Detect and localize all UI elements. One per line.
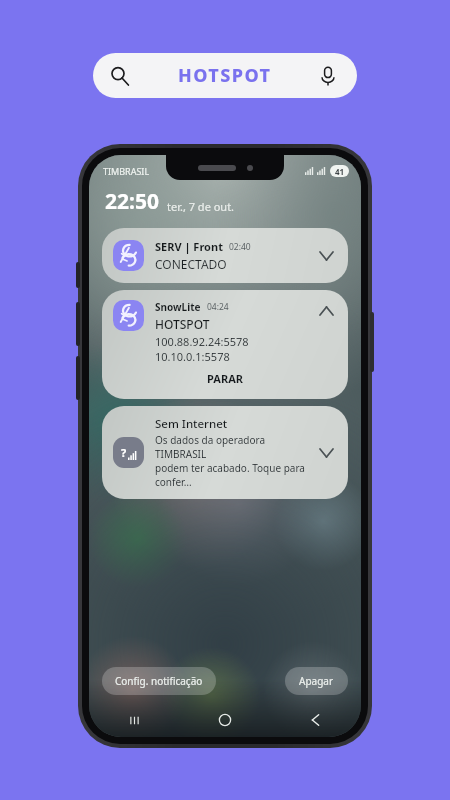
button[interactable]: SERV | Front [102,228,348,283]
staticText: TIMBRASIL [103,165,150,177]
staticText: 100.88.92.24:5578 [155,334,249,349]
staticText: 22:50 [105,187,159,216]
button[interactable]: ? [102,406,348,499]
staticText: ter., 7 de out. [167,199,235,214]
staticText: Sem Internet [155,416,228,432]
staticText: Apagar [299,674,334,688]
staticText: SERV | Front [155,239,223,254]
button[interactable]: Collapse [315,300,337,322]
staticText: podem ter acabado. Toque para confer… [155,461,315,489]
staticText: SnowLite [155,300,201,314]
staticText: 10.10.0.1:5578 [155,349,230,364]
staticText: Os dados da operadora TIMBRASIL [155,433,315,461]
button[interactable]: Voice search [315,63,341,89]
button[interactable]: Back [270,703,361,737]
staticText: ? [121,445,127,460]
button[interactable]: Apagar [285,667,348,695]
button[interactable]: Config. notificação [102,667,216,695]
staticText: 04:24 [207,301,229,313]
button[interactable]: Expand [315,442,337,464]
button[interactable]: Search [107,63,133,89]
staticText: Config. notificação [115,674,203,688]
button[interactable]: HOTSPOT [93,53,357,98]
staticText: PARAR [207,371,243,386]
staticText: CONECTADO [155,256,227,272]
button[interactable]: Expand [315,245,337,267]
button[interactable]: SnowLite [102,290,348,399]
staticText: 02:40 [229,241,251,253]
button[interactable]: Home [179,703,270,737]
button[interactable]: PARAR [113,368,337,389]
staticText: HOTSPOT [178,63,272,88]
staticText: HOTSPOT [155,316,210,332]
staticText: 41 [335,166,345,177]
button[interactable]: Recents [89,703,179,737]
